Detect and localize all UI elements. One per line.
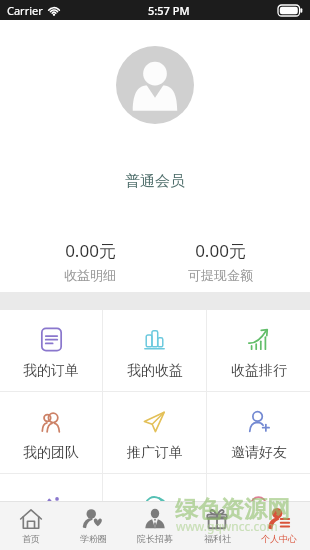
- button[interactable]: 收益排行: [207, 310, 310, 380]
- staticText: 首页: [22, 533, 40, 544]
- button[interactable]: 我的订单: [0, 310, 102, 380]
- button[interactable]: 推广订单: [103, 392, 206, 462]
- button[interactable]: 0.00元: [25, 239, 155, 283]
- button[interactable]: 0.00元: [155, 239, 285, 283]
- staticText: 学粉圈: [80, 533, 107, 544]
- staticText: Carrier: [7, 3, 43, 18]
- staticText: 0.00元: [65, 239, 116, 262]
- staticText: 普通会员: [125, 172, 185, 191]
- staticText: 收益明细: [64, 267, 116, 283]
- staticText: www.gqwncc.com: [176, 518, 278, 534]
- button[interactable]: Profile avatar: [116, 46, 194, 124]
- button[interactable]: 学粉圈: [62, 508, 124, 544]
- button[interactable]: 我的收藏: [103, 474, 206, 501]
- button[interactable]: 院长招募: [124, 508, 186, 544]
- button[interactable]: 首页: [0, 508, 62, 544]
- staticText: 0.00元: [195, 239, 246, 262]
- button[interactable]: 优惠券: [0, 474, 102, 501]
- staticText: 5:57 PM: [148, 3, 190, 18]
- button[interactable]: 我的团队: [0, 392, 102, 462]
- staticText: 福利社: [204, 533, 231, 544]
- staticText: 我的订单: [23, 362, 79, 380]
- staticText: 院长招募: [137, 533, 173, 544]
- staticText: 推广订单: [127, 444, 183, 462]
- staticText: 我的收益: [127, 362, 183, 380]
- button[interactable]: 福利社: [186, 508, 248, 544]
- button[interactable]: 我的收益: [103, 310, 206, 380]
- staticText: 个人中心: [261, 533, 297, 544]
- staticText: 邀请好友: [231, 444, 287, 462]
- button[interactable]: 个人中心: [248, 508, 310, 544]
- button[interactable]: 我的积分: [207, 474, 310, 501]
- staticText: 收益排行: [231, 362, 287, 380]
- staticText: 可提现金额: [188, 267, 253, 283]
- staticText: 绿色资源网: [175, 495, 290, 524]
- staticText: 我的团队: [23, 444, 79, 462]
- button[interactable]: 邀请好友: [207, 392, 310, 462]
